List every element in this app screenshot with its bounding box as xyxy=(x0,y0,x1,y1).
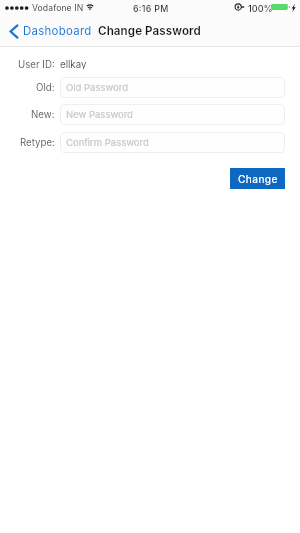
button[interactable]: Old Password xyxy=(60,77,285,98)
staticText: Vodafone IN xyxy=(32,3,84,13)
button[interactable]: New Password xyxy=(60,104,285,125)
staticText: Dashoboard xyxy=(23,24,92,38)
staticText: Retype: xyxy=(20,137,55,148)
staticText: New Password xyxy=(66,109,133,120)
staticText: New: xyxy=(31,109,55,120)
staticText: Old: xyxy=(36,82,55,93)
button[interactable]: Dashoboard xyxy=(7,20,94,42)
staticText: ellkay xyxy=(60,59,87,69)
staticText: Old Password xyxy=(66,82,129,93)
staticText: Change Password xyxy=(98,24,201,38)
button[interactable]: Change xyxy=(230,168,285,189)
staticText: Change xyxy=(238,173,278,185)
staticText: 100% xyxy=(248,3,273,14)
button[interactable]: Confirm Password xyxy=(60,132,285,153)
staticText: 6:16 PM xyxy=(133,3,169,14)
staticText: User ID: xyxy=(18,59,55,69)
staticText: Confirm Password xyxy=(66,137,149,148)
